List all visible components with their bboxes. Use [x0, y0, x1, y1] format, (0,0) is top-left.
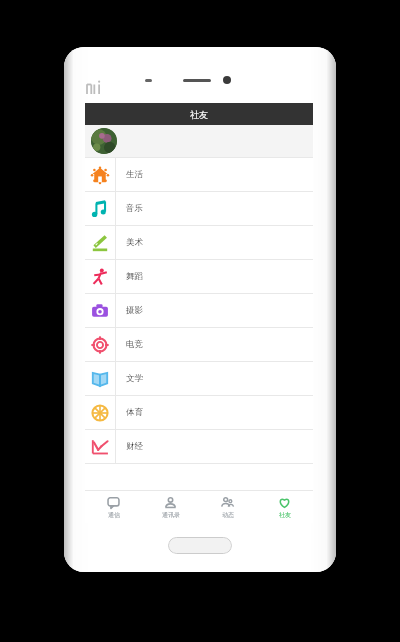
staticText: 摄影: [126, 305, 143, 316]
button[interactable]: 舞蹈: [85, 260, 313, 293]
staticText: 舞蹈: [126, 271, 143, 282]
staticText: 财经: [126, 441, 143, 452]
staticText: 社友: [279, 511, 291, 519]
button[interactable]: 文学: [85, 362, 313, 395]
button[interactable]: 社友: [256, 491, 313, 523]
button[interactable]: 音乐: [85, 192, 313, 225]
button[interactable]: 体育: [85, 396, 313, 429]
button[interactable]: 财经: [85, 430, 313, 463]
staticText: 通讯录: [162, 511, 180, 519]
button[interactable]: 摄影: [85, 294, 313, 327]
staticText: 生活: [126, 169, 143, 180]
staticText: 美术: [126, 237, 143, 248]
staticText: 电竞: [126, 339, 143, 350]
button[interactable]: 生活: [85, 158, 313, 191]
button[interactable]: Home: [168, 537, 232, 554]
staticText: 文学: [126, 373, 143, 384]
button[interactable]: 美术: [85, 226, 313, 259]
button[interactable]: [85, 125, 313, 157]
staticText: 音乐: [126, 203, 143, 214]
button[interactable]: 通信: [85, 491, 142, 523]
button[interactable]: 通讯录: [142, 491, 199, 523]
staticText: 通信: [108, 511, 120, 519]
staticText: 社友: [190, 109, 208, 120]
button[interactable]: 电竞: [85, 328, 313, 361]
staticText: 体育: [126, 407, 143, 418]
staticText: 动态: [222, 511, 234, 519]
button[interactable]: 动态: [199, 491, 256, 523]
